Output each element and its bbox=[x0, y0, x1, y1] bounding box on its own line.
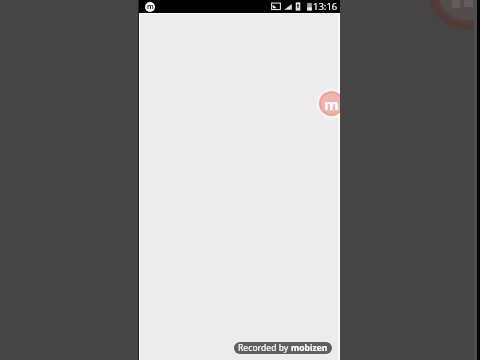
staticText: mobizen bbox=[291, 342, 328, 354]
button[interactable]: Recorded by mobizen bbox=[234, 342, 332, 354]
staticText: m bbox=[324, 94, 339, 114]
staticText: Recorded by bbox=[238, 342, 291, 354]
button[interactable]: Mobizen notification bbox=[145, 2, 155, 12]
button[interactable]: Mobizen recorder bbox=[315, 87, 340, 120]
staticText: m bbox=[147, 2, 154, 12]
staticText: 13:16 bbox=[313, 0, 338, 13]
